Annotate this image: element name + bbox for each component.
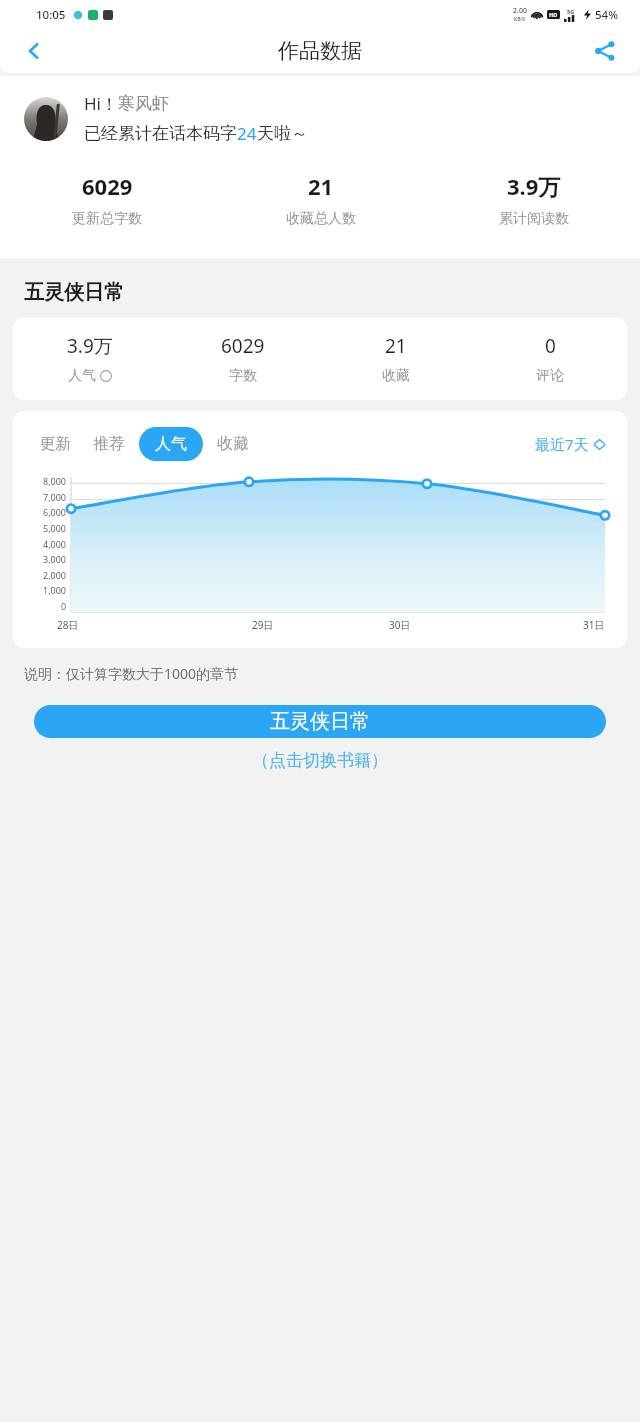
staticText: 五灵侠日常	[270, 709, 370, 734]
staticText: 4,000	[43, 538, 67, 550]
button[interactable]: 五灵侠日常	[34, 705, 606, 738]
staticText: 人气	[68, 367, 96, 385]
staticText: 6029	[221, 333, 265, 359]
staticText: （点击切换书籍）	[252, 750, 388, 771]
staticText: 收藏	[382, 367, 410, 385]
staticText: 7,000	[43, 491, 67, 503]
button[interactable]: 更新	[39, 434, 71, 454]
staticText: 10:05	[36, 7, 66, 23]
staticText: 评论	[536, 367, 564, 385]
button[interactable]: 21	[214, 171, 427, 228]
button[interactable]: （点击切换书籍）	[0, 750, 640, 771]
staticText: 30日	[389, 618, 411, 632]
staticText: 已经累计在话本码字	[84, 123, 237, 144]
staticText: 6029	[82, 171, 133, 201]
button[interactable]: 收藏	[217, 434, 249, 454]
staticText: 3.9万	[507, 171, 561, 201]
staticText: 天啦～	[257, 123, 308, 144]
staticText: 31日	[583, 618, 605, 632]
staticText: 5,000	[43, 522, 67, 534]
staticText: 作品数据	[278, 38, 362, 64]
staticText: 0	[545, 333, 556, 359]
staticText: 5G	[567, 8, 575, 15]
staticText: 28日	[57, 618, 79, 632]
button[interactable]: 最近7天	[535, 434, 605, 454]
staticText: 24	[237, 122, 257, 145]
button[interactable]: 6029	[166, 333, 319, 385]
staticText: 寒风虾	[118, 93, 169, 114]
staticText: 更新	[39, 434, 71, 454]
staticText: 3.9万	[67, 333, 113, 359]
staticText: Hi！	[84, 92, 118, 115]
staticText: 更新总字数	[72, 210, 142, 228]
button[interactable]: 6029	[0, 171, 214, 228]
staticText: 推荐	[93, 434, 125, 454]
button[interactable]: 推荐	[93, 434, 125, 454]
staticText: 收藏	[217, 434, 249, 454]
button[interactable]: 3.9万	[13, 333, 166, 385]
staticText: 54%	[595, 7, 618, 23]
staticText: 人气	[155, 434, 187, 454]
staticText: 字数	[229, 367, 257, 385]
button[interactable]: 3.9万	[427, 171, 640, 228]
staticText: HD	[549, 11, 558, 18]
button[interactable]: 0	[473, 333, 627, 385]
staticText: 收藏总人数	[286, 210, 356, 228]
staticText: 累计阅读数	[499, 210, 569, 228]
button[interactable]: 21	[319, 333, 473, 385]
staticText: 8,000	[43, 475, 67, 487]
staticText: 6,000	[43, 506, 67, 518]
staticText: 0	[61, 600, 67, 612]
staticText: 说明：仅计算字数大于1000的章节	[24, 664, 239, 683]
staticText: 3,000	[43, 553, 67, 565]
staticText: 最近7天	[535, 434, 589, 454]
staticText: 五灵侠日常	[24, 280, 124, 305]
staticText: 2.00	[513, 6, 527, 16]
staticText: 1,000	[43, 584, 67, 596]
staticText: KB/S	[514, 16, 526, 23]
button[interactable]: Share	[584, 30, 626, 72]
button[interactable]: 人气	[139, 427, 203, 461]
button[interactable]: Back	[12, 29, 56, 73]
staticText: 29日	[252, 618, 274, 632]
staticText: 2,000	[43, 569, 67, 581]
staticText: 21	[385, 333, 407, 359]
staticText: 21	[308, 171, 334, 201]
